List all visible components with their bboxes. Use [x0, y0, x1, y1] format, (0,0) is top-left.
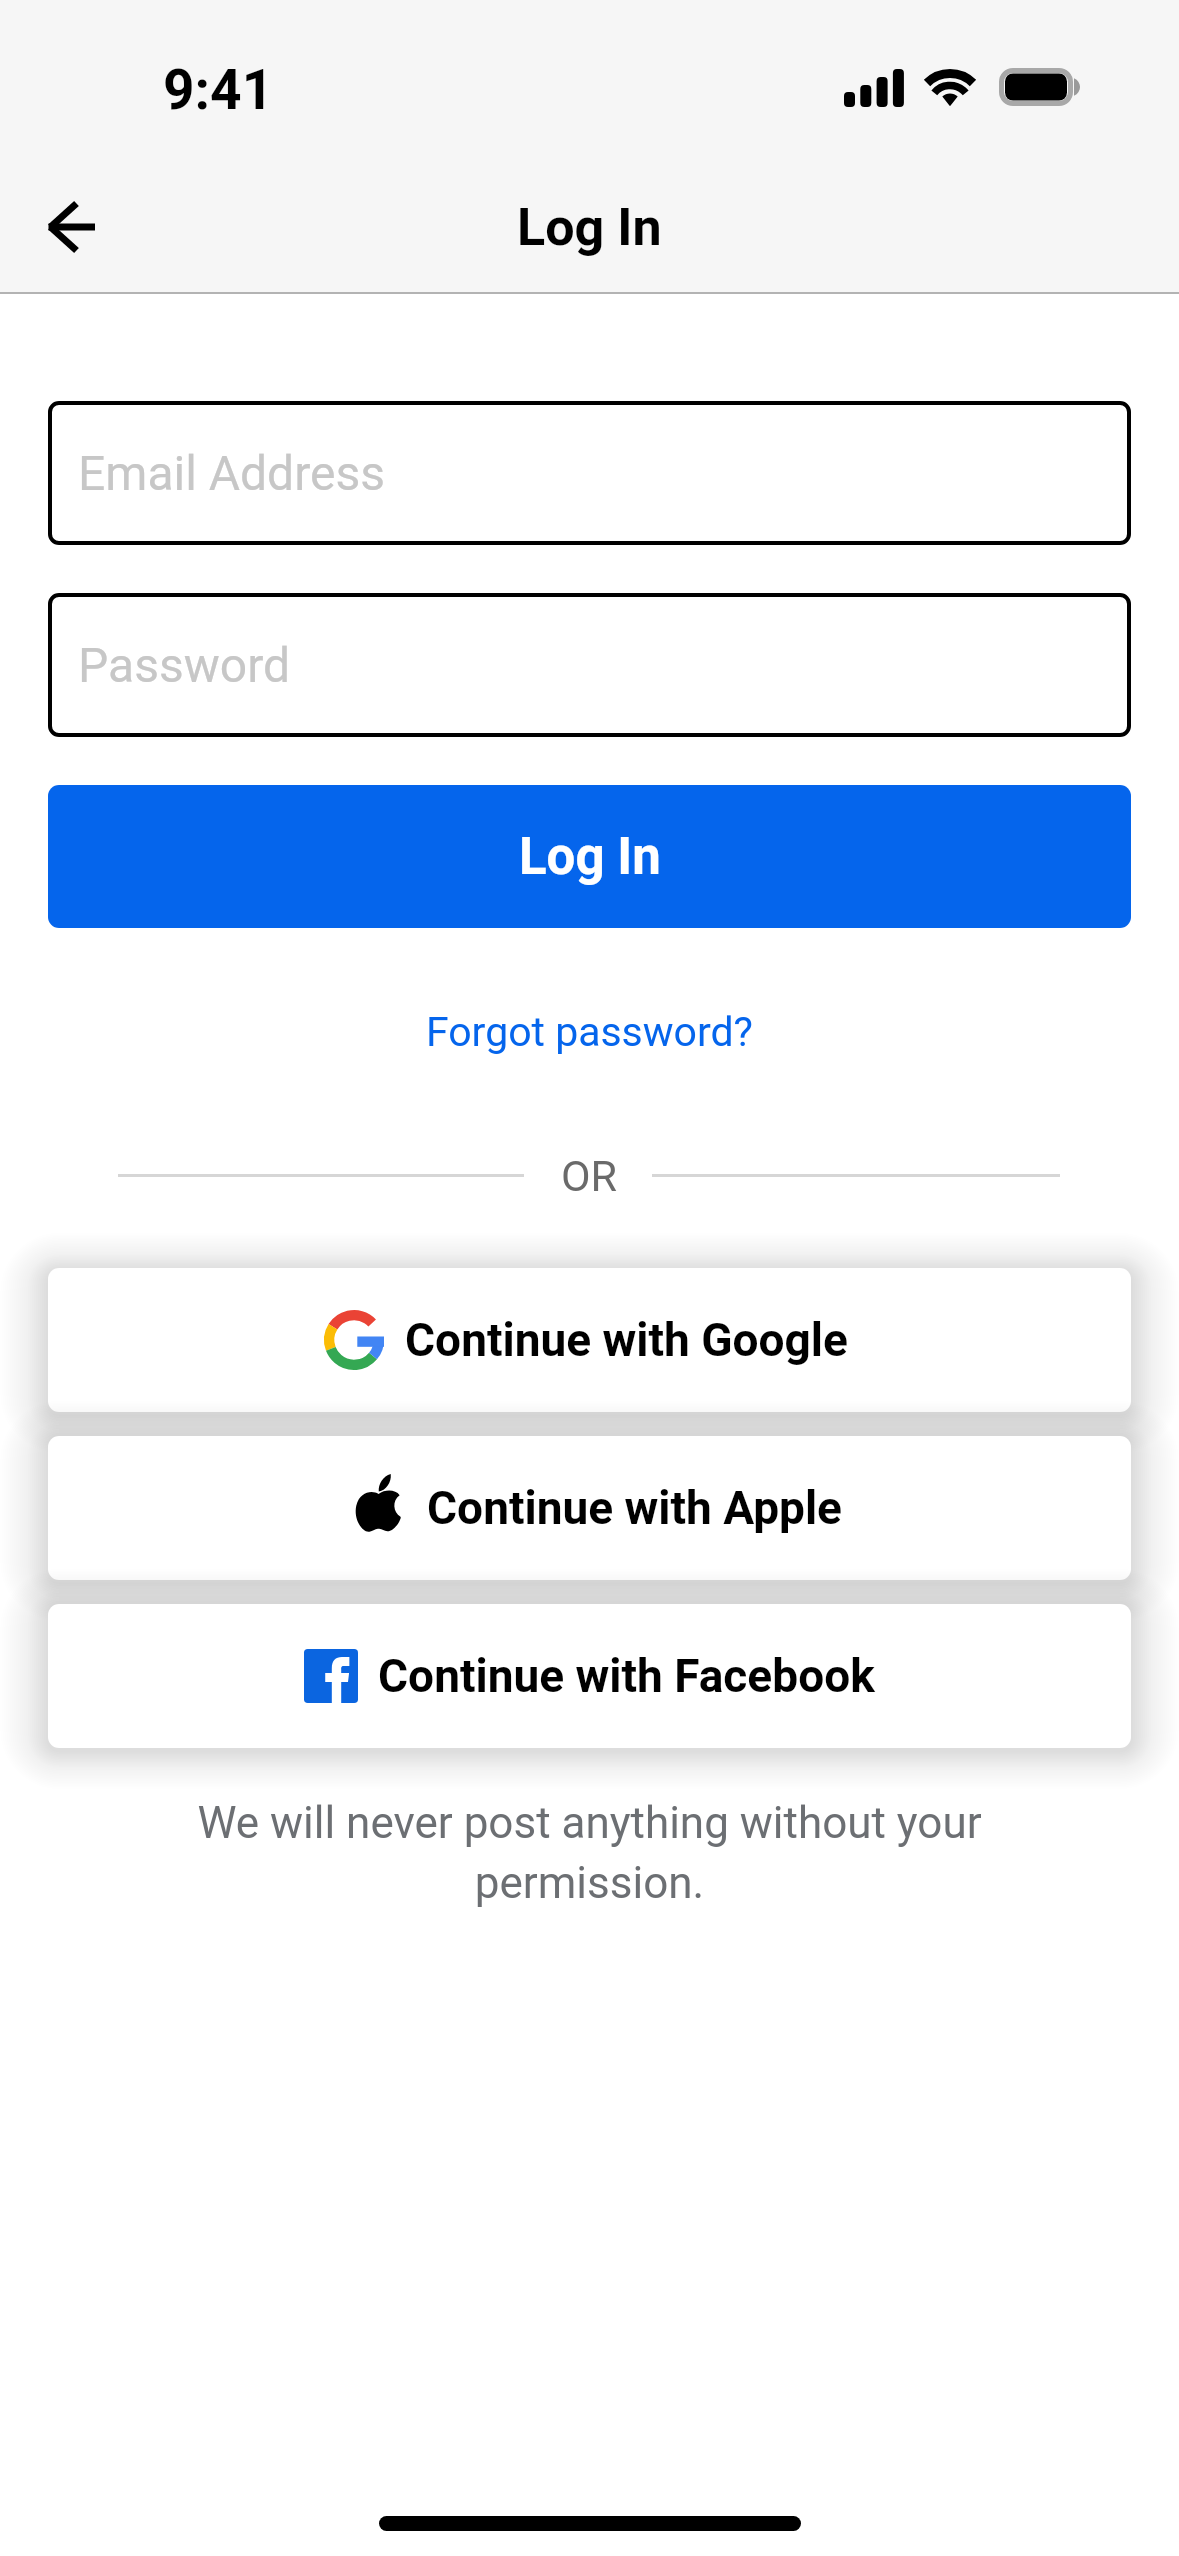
staticText: Continue with Google — [405, 1313, 848, 1367]
button[interactable]: Password — [48, 593, 1131, 737]
button[interactable]: Continue with Facebook — [48, 1604, 1131, 1748]
staticText: Log In — [517, 197, 662, 258]
staticText: Continue with Facebook — [378, 1649, 875, 1703]
button[interactable]: Continue with Google — [48, 1268, 1131, 1412]
button[interactable]: Email Address — [48, 401, 1131, 545]
staticText: Forgot password? — [426, 1008, 753, 1056]
staticText: OR — [561, 1151, 618, 1201]
staticText: We will never post anything without your… — [190, 1797, 989, 1908]
staticText: Password — [78, 637, 291, 693]
button[interactable]: Continue with Apple — [48, 1436, 1131, 1580]
staticText: Email Address — [78, 445, 386, 501]
staticText: 9:41 — [163, 58, 274, 122]
button[interactable]: Log In — [48, 785, 1131, 928]
button[interactable]: Back — [28, 189, 116, 265]
staticText: Log In — [519, 827, 661, 887]
button[interactable]: Forgot password? — [0, 1001, 1179, 1063]
staticText: Continue with Apple — [427, 1481, 842, 1535]
